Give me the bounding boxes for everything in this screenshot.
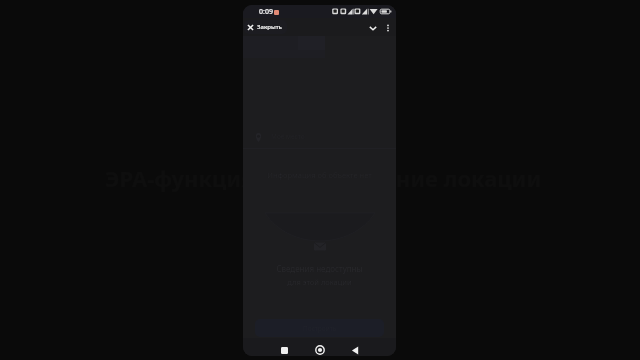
button[interactable]: Закрыть	[244, 20, 287, 34]
staticText: ЭРА-функция — определение локации	[105, 163, 542, 193]
button[interactable]: Back	[347, 342, 363, 356]
button[interactable]: Home	[312, 342, 328, 356]
staticText: 0:09	[259, 7, 273, 17]
button[interactable]: Collapse	[365, 20, 380, 35]
button[interactable]: Recents	[276, 342, 292, 356]
staticText: Закрыть	[257, 23, 282, 31]
staticText: Сведения недоступны	[276, 263, 363, 274]
button[interactable]: More options	[380, 20, 395, 35]
